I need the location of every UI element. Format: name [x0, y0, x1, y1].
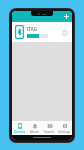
staticText: Alarm [30, 130, 39, 134]
button[interactable]: Search [42, 121, 57, 135]
button[interactable]: Devices [12, 121, 27, 135]
staticText: ITAG [27, 26, 37, 32]
button[interactable]: Settings [57, 121, 72, 135]
button[interactable]: Device settings [60, 28, 69, 37]
button[interactable]: Add device [62, 12, 70, 20]
button[interactable]: ITAG [12, 22, 72, 42]
staticText: Search [44, 130, 55, 134]
staticText: Devices [14, 130, 26, 134]
staticText: Settings [58, 130, 71, 134]
button[interactable]: Alarm [27, 121, 42, 135]
